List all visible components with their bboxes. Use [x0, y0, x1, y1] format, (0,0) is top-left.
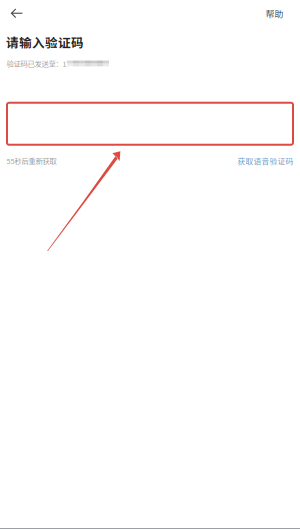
- staticText: 帮助: [265, 7, 283, 20]
- staticText: 请输入验证码: [6, 33, 84, 51]
- staticText: 55秒后重新获取: [6, 155, 56, 166]
- button[interactable]: Back: [0, 0, 34, 27]
- button[interactable]: 帮助: [249, 0, 300, 26]
- staticText: 获取语音验证码: [237, 155, 293, 166]
- button[interactable]: Verification code field: [7, 103, 293, 145]
- staticText: 验证码已发送至：1: [6, 58, 66, 69]
- button[interactable]: 获取语音验证码: [237, 155, 293, 166]
